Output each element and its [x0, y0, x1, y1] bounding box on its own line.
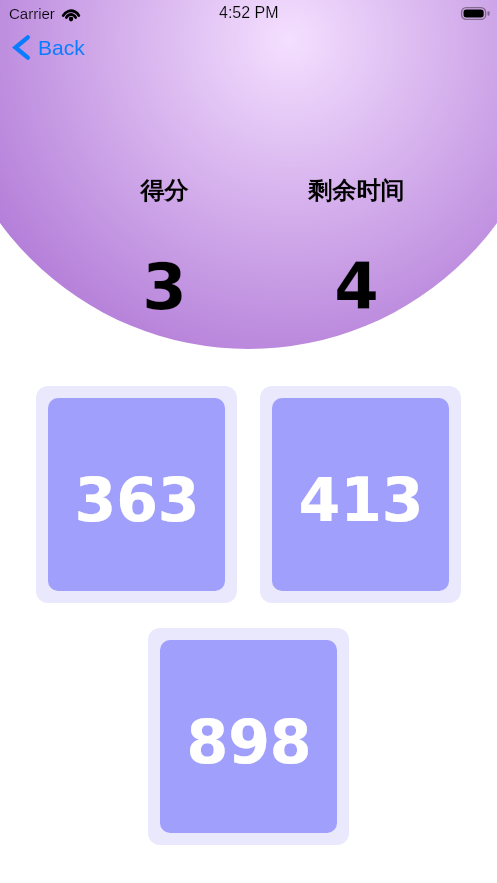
button[interactable]: 363 [36, 386, 237, 603]
staticText: 3 [142, 250, 187, 325]
staticText: 4 [334, 250, 379, 325]
staticText: 898 [186, 707, 312, 777]
staticText: 4:52 PM [219, 4, 279, 22]
button[interactable]: Back [8, 32, 93, 63]
staticText: 剩余时间 [308, 176, 404, 206]
staticText: Back [38, 36, 85, 59]
button[interactable]: 898 [148, 628, 349, 845]
staticText: 363 [74, 465, 200, 535]
other: Battery [461, 7, 489, 20]
staticText: 得分 [140, 176, 188, 206]
staticText: Carrier [9, 5, 55, 22]
other: Wi-Fi signal [61, 7, 81, 21]
staticText: 413 [298, 465, 424, 535]
button[interactable]: 413 [260, 386, 461, 603]
